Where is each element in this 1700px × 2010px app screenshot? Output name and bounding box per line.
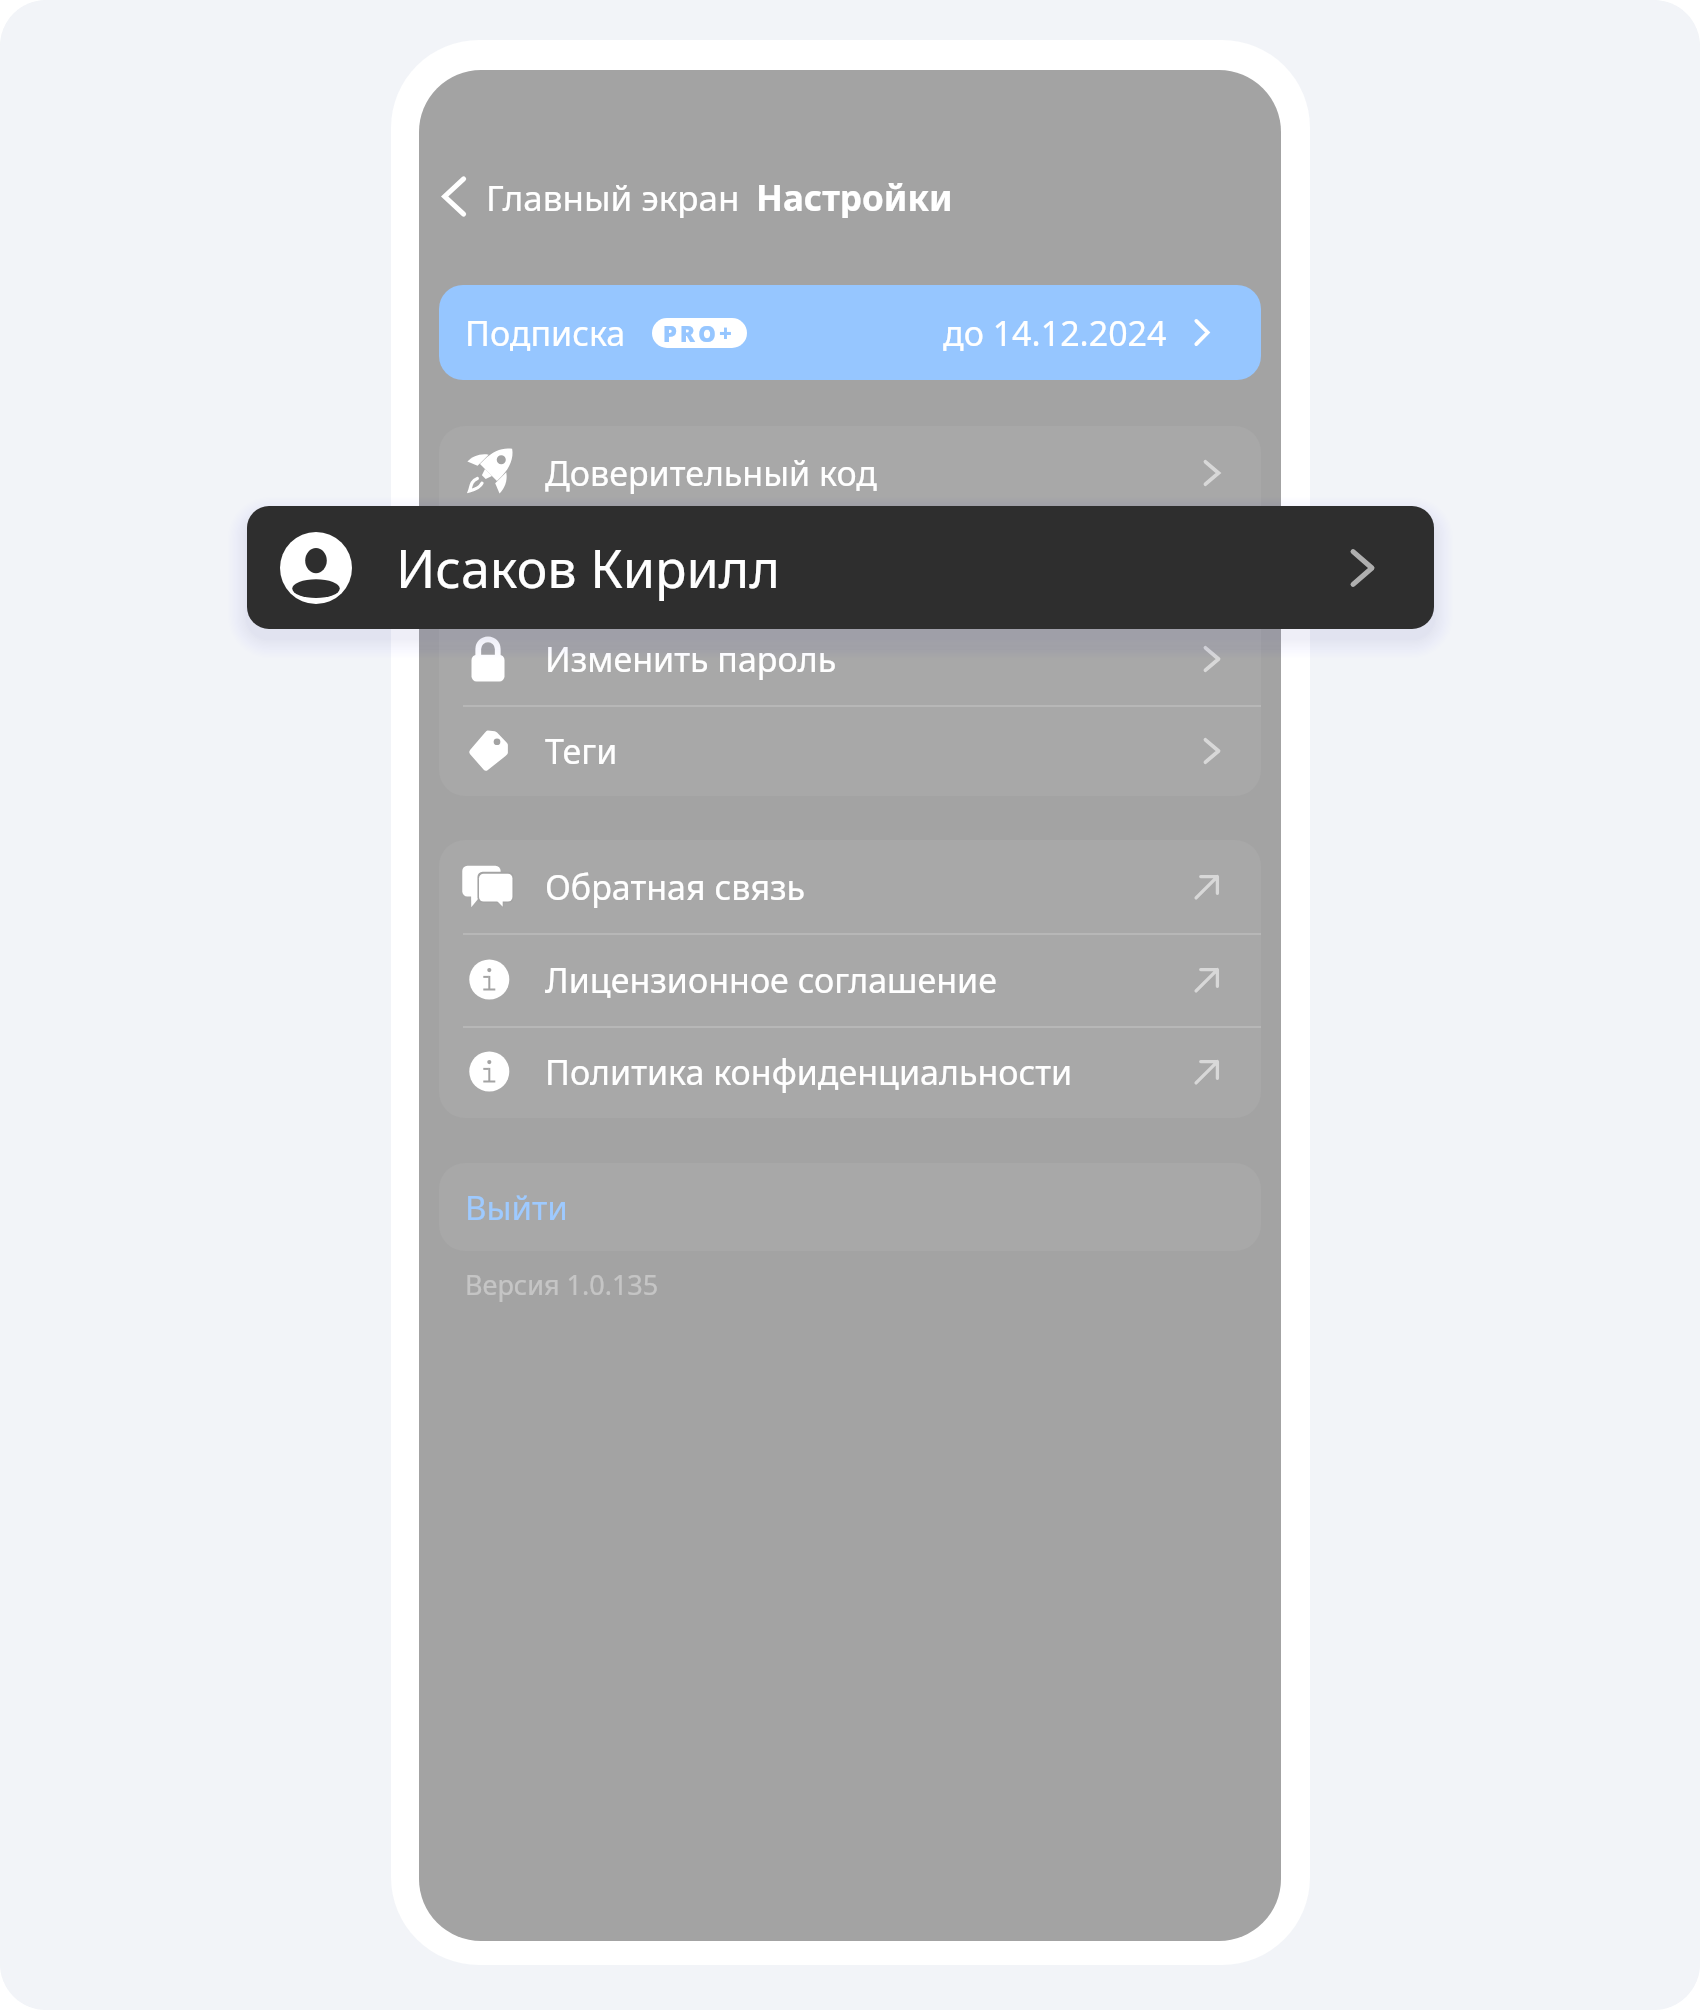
button[interactable]: Исаков Кирилл [439,519,1261,612]
staticText: Настройки [756,174,953,218]
staticText: Обратная связь [545,864,806,910]
staticText: до 14.12.2024 [943,310,1167,356]
staticText: Исаков Кирилл [545,543,797,589]
staticText: Теги [545,728,618,774]
staticText: Исаков Кирилл [396,532,780,603]
staticText: PRO+ [663,318,736,348]
button[interactable]: Обратная связь [439,840,1261,933]
button[interactable]: Лицензионное соглашение [439,933,1261,1026]
staticText: Версия 1.0.135 [465,1266,659,1303]
staticText: Доверительный код [545,450,877,496]
button[interactable]: Исаков Кирилл [247,506,1434,629]
button[interactable]: Главный экран, назад [419,174,744,218]
staticText: Выйти [465,1185,568,1230]
staticText: Лицензионное соглашение [545,957,997,1003]
button[interactable]: Подписка [439,285,1261,380]
button[interactable]: Теги [439,705,1261,796]
button[interactable]: Выйти [439,1163,1261,1251]
staticText: Изменить пароль [545,636,837,682]
staticText: Главный экран [486,174,740,218]
button[interactable]: Изменить пароль [439,612,1261,705]
staticText: Подписка [465,310,626,356]
button[interactable]: Политика конфиденциальности [439,1026,1261,1118]
button[interactable]: Доверительный код [439,426,1261,519]
staticText: Политика конфиденциальности [545,1049,1073,1095]
